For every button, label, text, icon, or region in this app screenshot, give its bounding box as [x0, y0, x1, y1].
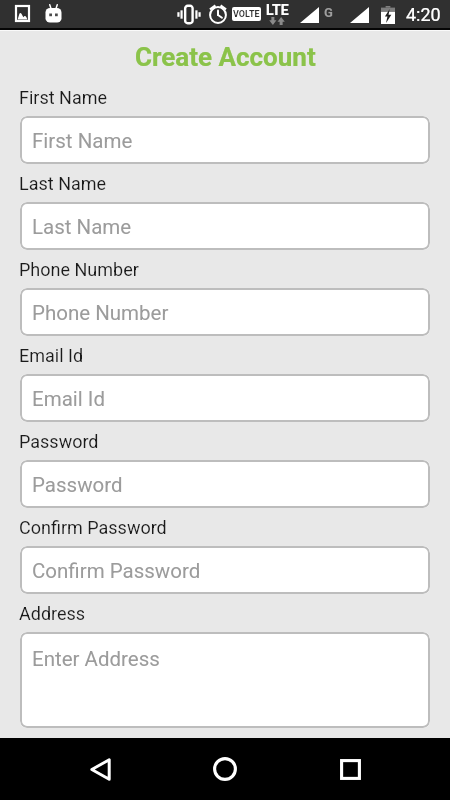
staticText: Create Account	[135, 42, 316, 72]
button[interactable]: Back	[38, 738, 163, 800]
button[interactable]: Phone Number	[20, 288, 430, 336]
button[interactable]: Recent apps	[288, 738, 413, 800]
staticText: Email Id	[32, 387, 105, 411]
button[interactable]: Email Id	[20, 374, 430, 422]
staticText: Email Id	[19, 345, 84, 366]
staticText: Enter Address	[32, 647, 160, 671]
staticText: First Name	[32, 129, 133, 153]
button[interactable]: Password	[20, 460, 430, 508]
staticText: 4:20	[406, 4, 441, 25]
staticText: G	[324, 5, 333, 20]
staticText: VOLTE	[233, 9, 260, 20]
button[interactable]: Home	[162, 738, 287, 800]
staticText: Last Name	[32, 215, 132, 239]
staticText: First Name	[19, 87, 108, 108]
button[interactable]: Confirm Password	[20, 546, 430, 594]
staticText: Phone Number	[32, 301, 169, 325]
button[interactable]: Enter Address	[20, 632, 430, 728]
staticText: Phone Number	[19, 259, 139, 280]
staticText: LTE	[266, 2, 289, 18]
button[interactable]: Last Name	[20, 202, 430, 250]
staticText: Confirm Password	[32, 559, 201, 583]
staticText: Password	[32, 473, 123, 497]
staticText: Password	[19, 431, 99, 452]
staticText: Address	[19, 603, 86, 624]
staticText: Confirm Password	[19, 517, 167, 538]
staticText: Last Name	[19, 173, 107, 194]
button[interactable]: First Name	[20, 116, 430, 164]
